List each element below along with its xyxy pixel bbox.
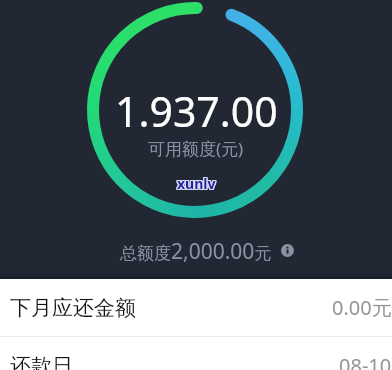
staticText: 下月应还金额 — [10, 295, 136, 321]
staticText: xunlv — [176, 173, 215, 192]
staticText: 1.937.00 — [115, 83, 278, 139]
staticText: 可用额度(元) — [148, 137, 244, 160]
staticText: xunlv — [176, 174, 215, 193]
staticText: xunlv — [178, 174, 217, 193]
staticText: 还款日 — [10, 353, 73, 370]
staticText: xunlv — [176, 175, 215, 194]
button[interactable]: 还款日 — [0, 337, 392, 370]
staticText: xunlv — [178, 173, 217, 192]
staticText: xunlv — [177, 173, 216, 192]
staticText: 08-10 — [339, 352, 392, 370]
staticText: 0.00元 — [332, 294, 392, 321]
button[interactable]: 下月应还金额 — [0, 279, 392, 336]
staticText: 总额度2,000.00元 — [120, 237, 272, 266]
staticText: xunlv — [178, 175, 217, 194]
staticText: xunlv — [177, 174, 216, 193]
staticText: xunlv — [177, 175, 216, 194]
button[interactable]: 额度说明 — [281, 244, 294, 257]
